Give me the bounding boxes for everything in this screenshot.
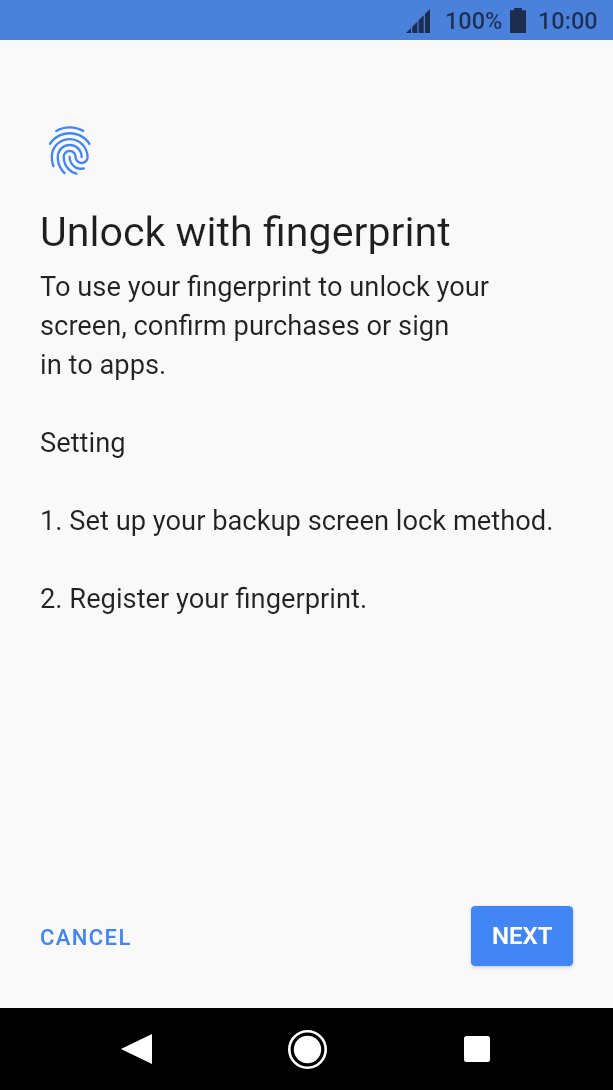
staticText: CANCEL (40, 925, 132, 951)
staticText: Unlock with fingerprint (40, 208, 451, 256)
staticText: To use your fingerprint to unlock your s… (40, 271, 490, 381)
staticText: 100% (445, 7, 503, 35)
button[interactable]: NEXT (471, 906, 573, 966)
staticText: 2. Register your fingerprint. (40, 583, 368, 615)
button[interactable]: Home (274, 1016, 340, 1082)
staticText: NEXT (492, 922, 553, 950)
button[interactable]: Recent apps (444, 1016, 510, 1082)
staticText: 10:00 (538, 7, 598, 35)
staticText: Setting (40, 427, 126, 459)
staticText: 1. Set up your backup screen lock method… (40, 505, 554, 537)
button[interactable]: Back (104, 1016, 170, 1082)
button[interactable]: CANCEL (25, 907, 147, 969)
